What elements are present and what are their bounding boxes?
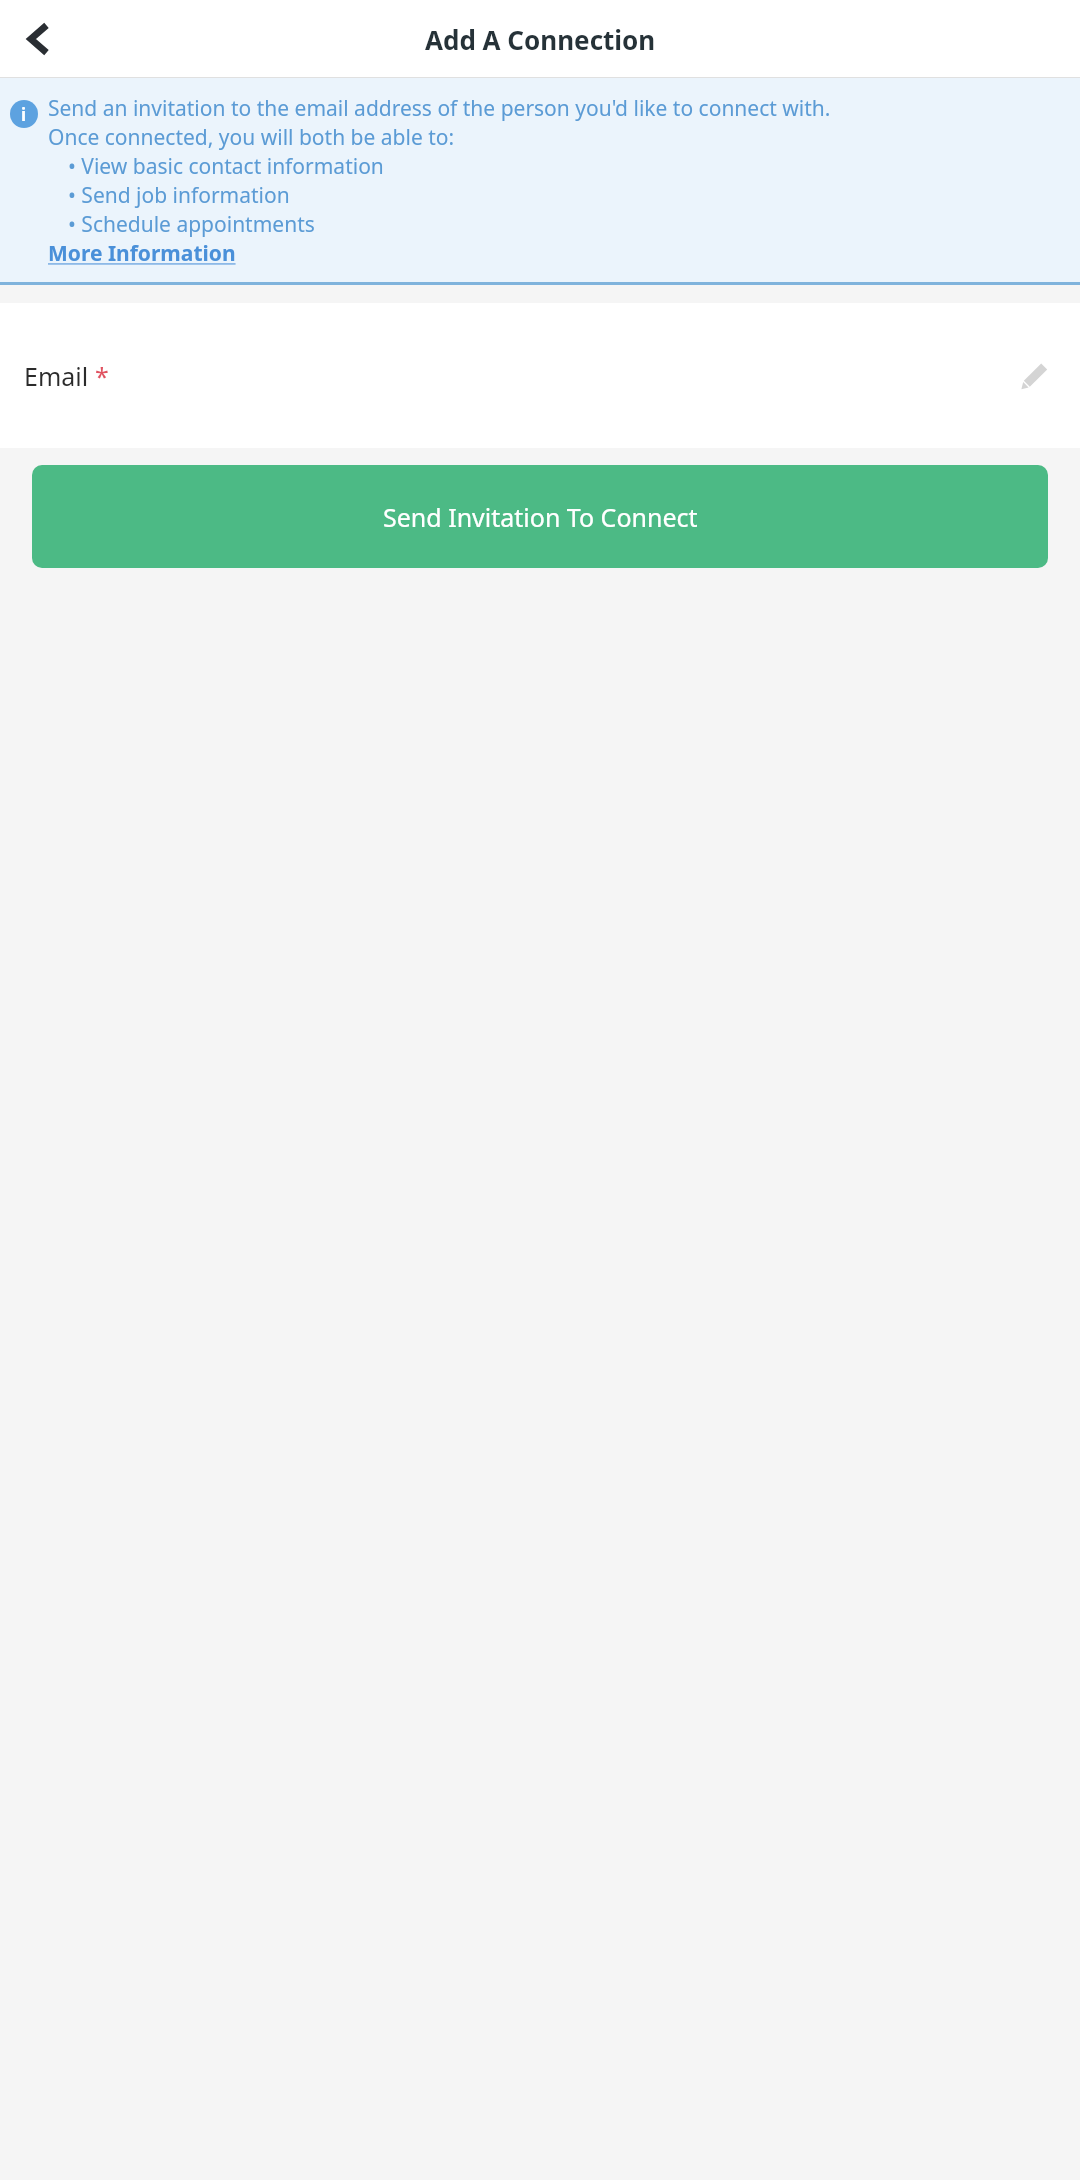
staticText: • View basic contact information — [68, 152, 384, 181]
button[interactable]: Email — [0, 303, 1080, 448]
staticText: Once connected, you will both be able to… — [48, 123, 455, 152]
staticText: * — [95, 359, 109, 393]
staticText: Send an invitation to the email address … — [48, 94, 831, 123]
staticText: More Information — [48, 239, 236, 268]
staticText: Add A Connection — [425, 22, 656, 57]
button[interactable]: Back — [0, 0, 78, 78]
other: Edit email — [1012, 354, 1056, 398]
staticText: i — [21, 103, 27, 126]
button[interactable]: Send Invitation To Connect — [32, 465, 1048, 568]
staticText: • Schedule appointments — [68, 210, 315, 239]
button[interactable]: More Information — [48, 239, 236, 268]
staticText: • Send job information — [68, 181, 290, 210]
staticText: Send Invitation To Connect — [383, 500, 698, 534]
staticText: Email — [24, 359, 95, 393]
